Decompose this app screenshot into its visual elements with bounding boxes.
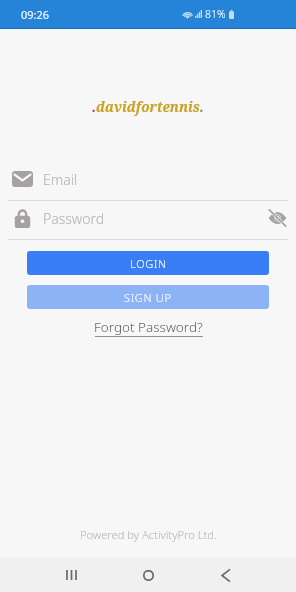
button[interactable]: Show password bbox=[266, 207, 288, 229]
button[interactable]: Forgot Password? bbox=[89, 316, 208, 339]
staticText: Powered by ActivityPro Ltd. bbox=[80, 527, 217, 542]
button[interactable]: Password bbox=[0, 203, 296, 240]
staticText: SIGN UP bbox=[124, 290, 172, 305]
staticText: Email bbox=[43, 170, 78, 189]
button[interactable]: Back bbox=[187, 558, 264, 592]
staticText: .davidfortennis. bbox=[92, 98, 204, 116]
staticText: LOGIN bbox=[130, 256, 167, 271]
button[interactable]: SIGN UP bbox=[27, 285, 269, 309]
button[interactable]: Email bbox=[0, 164, 296, 201]
staticText: 09:26 bbox=[21, 7, 50, 22]
staticText: Password bbox=[43, 209, 105, 228]
button[interactable]: LOGIN bbox=[27, 251, 269, 275]
button[interactable]: Home bbox=[110, 558, 187, 592]
button[interactable]: Recent apps bbox=[33, 558, 110, 592]
staticText: Forgot Password? bbox=[94, 318, 203, 336]
staticText: 81% bbox=[205, 7, 226, 21]
